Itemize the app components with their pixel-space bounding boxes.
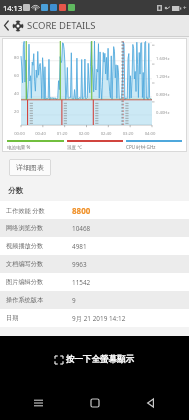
staticText: 电池电量 % xyxy=(7,144,31,150)
button[interactable]: 网络浏览分数 xyxy=(0,219,189,237)
button[interactable]: 日期 xyxy=(0,309,189,327)
button[interactable]: 按一下全螢幕顯示 xyxy=(55,354,134,365)
staticText: 文档编写分数 xyxy=(6,260,72,268)
staticText: 04:00 xyxy=(139,131,161,137)
staticText: 图片编辑分数 xyxy=(6,278,72,286)
staticText: 分数 xyxy=(8,186,23,195)
staticText: 操作系统版本 xyxy=(6,296,72,304)
button[interactable]: Recent apps xyxy=(20,393,56,413)
staticText: 10468 xyxy=(72,224,91,233)
staticText: + xyxy=(183,4,187,12)
staticText: 02:40 xyxy=(95,131,117,137)
staticText: 4981 xyxy=(72,242,87,251)
staticText: 按一下全螢幕顯示 xyxy=(66,354,134,365)
staticText: 1.20Hz xyxy=(156,74,170,80)
staticText: 视频播放分数 xyxy=(6,242,72,250)
staticText: 1.60Hz xyxy=(156,56,170,62)
staticText: 9963 xyxy=(72,260,87,269)
staticText: 00:40 xyxy=(30,131,51,137)
staticText: 40 xyxy=(14,91,19,97)
button[interactable]: 视频播放分数 xyxy=(0,237,189,255)
button[interactable]: 详细图表 xyxy=(9,159,51,176)
staticText: 网络浏览分数 xyxy=(6,224,72,232)
staticText: 工作效能 分数 xyxy=(6,206,72,214)
staticText: 0.40Hz xyxy=(156,110,170,116)
staticText: 11542 xyxy=(72,278,91,287)
staticText: 60 xyxy=(14,73,19,79)
button[interactable]: 操作系统版本 xyxy=(0,291,189,309)
staticText: 14:13 xyxy=(3,3,23,13)
staticText: 00:00 xyxy=(9,131,30,137)
staticText: 80 xyxy=(14,55,19,61)
staticText: 温度 ℃ xyxy=(67,144,82,150)
staticText: 详细图表 xyxy=(16,163,44,172)
button[interactable]: Back xyxy=(133,393,169,413)
staticText: 0.80Hz xyxy=(156,92,170,98)
button[interactable]: 图片编辑分数 xyxy=(0,273,189,291)
staticText: 日期 xyxy=(6,314,72,322)
staticText: 8800 xyxy=(72,205,91,216)
button[interactable]: Back xyxy=(0,15,12,36)
staticText: 9月 21 2019 14:12 xyxy=(72,314,126,323)
staticText: 01:20 xyxy=(51,131,73,137)
staticText: CPU 时钟 GHz xyxy=(126,144,156,150)
staticText: SCORE DETAILS xyxy=(27,19,96,32)
staticText: 03:20 xyxy=(117,131,139,137)
staticText: 9 xyxy=(72,296,76,305)
button[interactable]: Home xyxy=(77,393,113,413)
staticText: 20 xyxy=(14,109,19,115)
button[interactable]: 文档编写分数 xyxy=(0,255,189,273)
staticText: 02:00 xyxy=(73,131,95,137)
button[interactable]: 工作效能 分数 xyxy=(0,201,189,219)
